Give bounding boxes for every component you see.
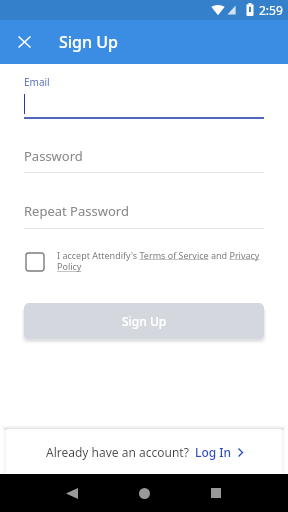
staticText: Log In <box>195 444 232 460</box>
staticText: Email <box>24 75 50 89</box>
button[interactable]: Back <box>54 475 90 511</box>
staticText: Password <box>24 147 83 165</box>
button[interactable]: Password <box>24 142 264 173</box>
staticText: Already have an account? <box>46 444 189 460</box>
staticText: Repeat Password <box>24 202 129 220</box>
button[interactable]: Home <box>126 475 162 511</box>
button[interactable]: Repeat Password <box>24 197 264 229</box>
button[interactable]: I accept Attendify's Terms of Service an… <box>26 249 266 273</box>
staticText: Sign Up <box>122 313 167 329</box>
button[interactable]: Recent apps <box>198 475 234 511</box>
button[interactable]: Close <box>11 29 37 55</box>
button[interactable]: Sign Up <box>24 303 264 339</box>
staticText: 2:59 <box>259 2 283 18</box>
button[interactable]: Already have an account? <box>6 429 282 474</box>
staticText: Sign Up <box>59 31 118 53</box>
staticText: I accept Attendify's Terms of Service an… <box>57 249 266 273</box>
button[interactable]: Email input <box>24 72 264 120</box>
